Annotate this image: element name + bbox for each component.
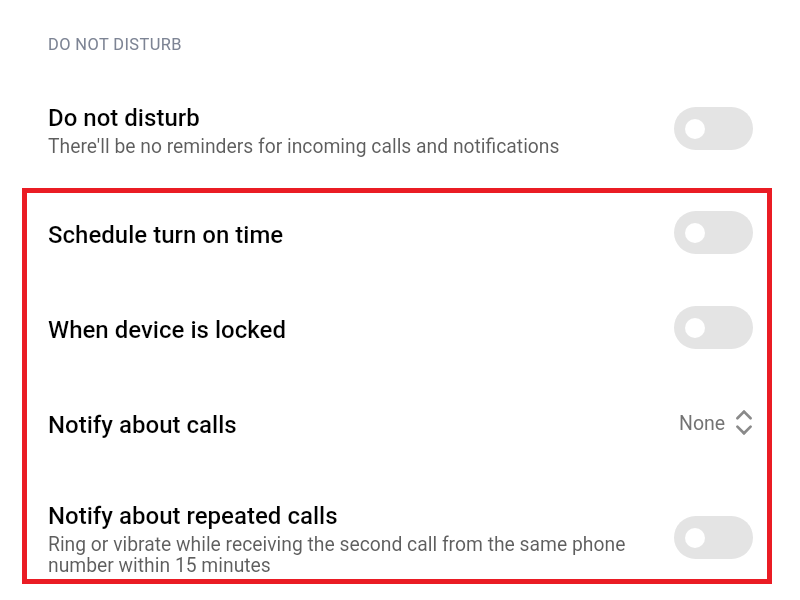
staticText: DO NOT DISTURB [48,35,182,54]
button[interactable]: Notify about repeated calls [0,502,800,577]
staticText: Do not disturb [48,104,200,132]
button[interactable]: Notify about repeated calls, off [674,516,753,559]
button[interactable]: When device is locked [0,308,800,351]
button[interactable]: When device is locked, off [674,306,753,349]
button[interactable]: Notify about calls [0,408,800,442]
staticText: None [679,412,726,435]
staticText: There'll be no reminders for incoming ca… [48,135,560,158]
staticText: Schedule turn on time [48,221,284,249]
staticText: Ring or vibrate while receiving the seco… [48,533,662,577]
button[interactable]: Schedule turn on time [0,213,800,256]
button[interactable]: Change notify about calls [735,408,753,442]
button[interactable]: Do not disturb, off [674,107,753,150]
staticText: When device is locked [48,316,287,344]
button[interactable]: Schedule turn on time, off [674,211,753,254]
button[interactable]: Do not disturb [0,104,800,158]
staticText: Notify about calls [48,411,237,439]
staticText: Notify about repeated calls [48,502,338,530]
